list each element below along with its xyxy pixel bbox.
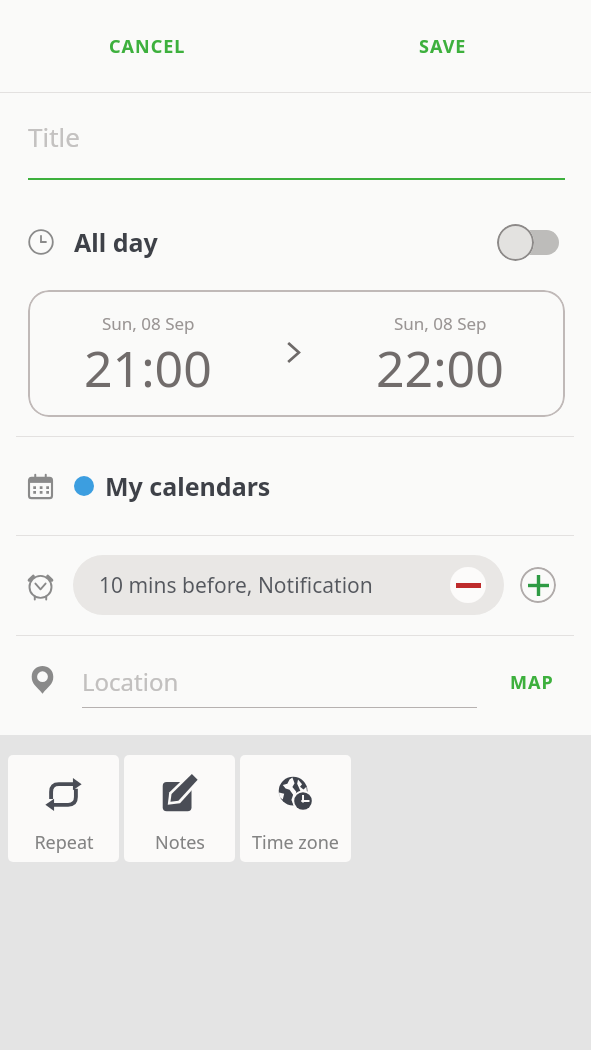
button[interactable]: 10 mins before, Notification — [73, 555, 504, 615]
button[interactable]: Location — [82, 659, 477, 708]
button[interactable]: CANCEL — [0, 0, 295, 92]
staticText: Repeat — [34, 830, 94, 855]
staticText: 21:00 — [84, 334, 212, 402]
button[interactable]: SAVE — [295, 0, 591, 92]
staticText: All day — [74, 225, 158, 259]
staticText: MAP — [510, 670, 554, 695]
staticText: Notes — [155, 830, 205, 855]
staticText: Sun, 08 Sep — [394, 312, 487, 335]
staticText: 10 mins before, Notification — [99, 571, 373, 600]
button[interactable]: Add reminder — [520, 567, 556, 603]
button[interactable]: Repeat — [8, 755, 119, 862]
button[interactable]: Sun, 08 Sep — [28, 290, 565, 417]
button[interactable]: Notes — [124, 755, 235, 862]
staticText: Time zone — [252, 830, 339, 855]
staticText: SAVE — [419, 34, 467, 59]
button[interactable]: Remove reminder — [450, 567, 486, 603]
button[interactable]: Title — [28, 93, 565, 188]
staticText: Title — [28, 119, 80, 154]
staticText: 22:00 — [376, 334, 504, 402]
staticText: CANCEL — [109, 34, 186, 59]
button[interactable]: My calendars — [0, 446, 591, 526]
staticText: Sun, 08 Sep — [102, 312, 195, 335]
staticText: Location — [82, 665, 179, 698]
button[interactable]: All day — [0, 202, 591, 282]
button[interactable]: MAP — [500, 665, 564, 699]
button[interactable]: Time zone — [240, 755, 351, 862]
staticText: My calendars — [105, 469, 271, 503]
